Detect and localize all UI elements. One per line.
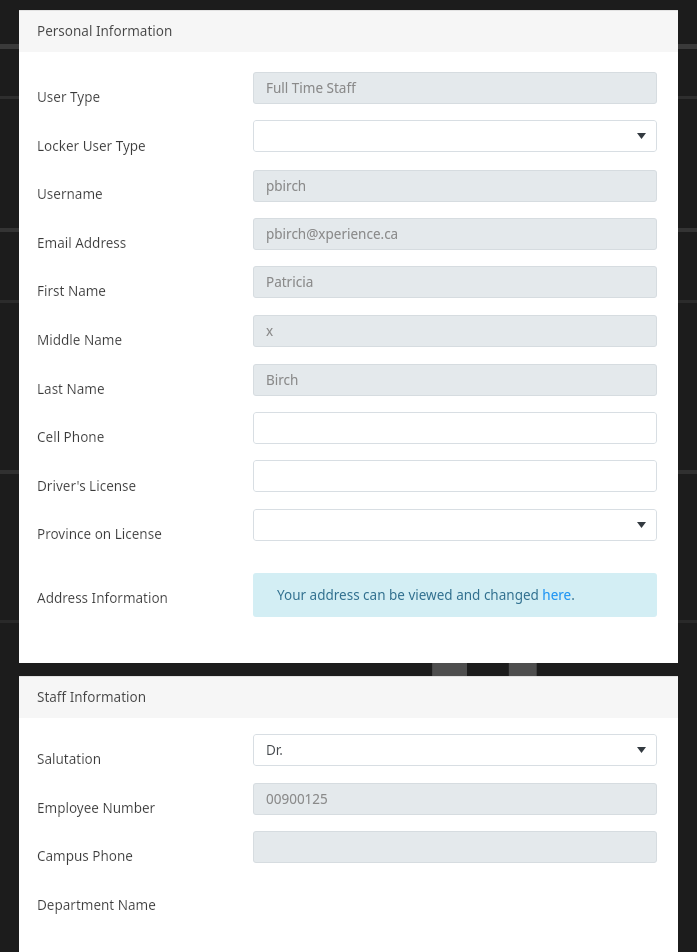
staticText: 00900125 bbox=[266, 790, 328, 808]
staticText: Campus Phone bbox=[37, 847, 133, 865]
staticText: First Name bbox=[37, 282, 106, 300]
button[interactable]: User Type bbox=[253, 72, 657, 104]
staticText: Province on License bbox=[37, 525, 162, 543]
button[interactable]: Username bbox=[253, 170, 657, 202]
staticText: User Type bbox=[37, 88, 101, 106]
staticText: Full Time Staff bbox=[266, 79, 356, 97]
staticText: Email Address bbox=[37, 234, 127, 252]
staticText: Salutation bbox=[37, 750, 102, 768]
staticText: Middle Name bbox=[37, 331, 123, 349]
staticText: x bbox=[266, 322, 274, 340]
button[interactable]: Last Name bbox=[253, 364, 657, 396]
staticText: pbirch@xperience.ca bbox=[266, 225, 399, 243]
staticText: Department Name bbox=[37, 896, 156, 914]
staticText: pbirch bbox=[266, 177, 307, 195]
staticText: Birch bbox=[266, 371, 299, 389]
button[interactable]: Province on License bbox=[253, 509, 657, 541]
button[interactable]: Middle Name bbox=[253, 315, 657, 347]
staticText: Dr. bbox=[266, 741, 283, 759]
button[interactable]: Email Address bbox=[253, 218, 657, 250]
button[interactable]: Locker User Type bbox=[253, 120, 657, 152]
staticText: Driver's License bbox=[37, 477, 137, 495]
button[interactable]: Salutation bbox=[253, 734, 657, 766]
staticText: Last Name bbox=[37, 380, 105, 398]
staticText: Locker User Type bbox=[37, 137, 146, 155]
staticText: Address Information bbox=[37, 589, 168, 607]
staticText: Patricia bbox=[266, 273, 314, 291]
button[interactable]: Employee Number bbox=[253, 783, 657, 815]
staticText: Staff Information bbox=[37, 688, 147, 706]
staticText: Your address can be viewed and changed h… bbox=[277, 586, 575, 604]
staticText: Cell Phone bbox=[37, 428, 105, 446]
button[interactable]: First Name bbox=[253, 266, 657, 298]
button[interactable]: Campus Phone bbox=[253, 831, 657, 863]
staticText: Employee Number bbox=[37, 799, 156, 817]
button[interactable]: Driver's License bbox=[253, 460, 657, 492]
staticText: Personal Information bbox=[37, 22, 173, 40]
staticText: Username bbox=[37, 185, 103, 203]
button[interactable]: Your address can be viewed and changed h… bbox=[253, 573, 657, 617]
button[interactable]: Cell Phone bbox=[253, 412, 657, 444]
